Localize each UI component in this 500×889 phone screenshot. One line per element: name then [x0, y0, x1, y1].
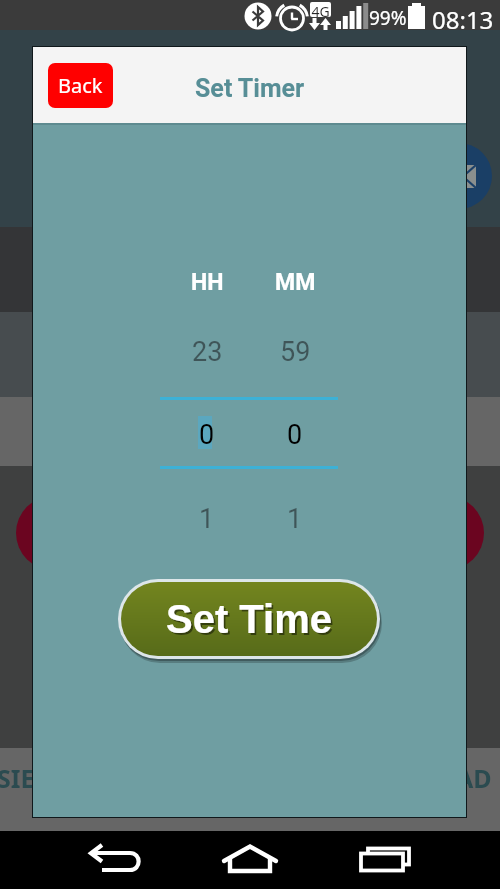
button[interactable]: Back: [48, 63, 113, 108]
button[interactable]: Recent apps: [350, 831, 430, 889]
staticText: 1: [287, 503, 303, 535]
staticText: 1: [199, 503, 215, 535]
staticText: Set Time: [168, 599, 334, 644]
staticText: 23: [192, 336, 223, 368]
button[interactable]: Back: [68, 831, 162, 889]
staticText: Set Time: [166, 597, 332, 642]
staticText: Back: [58, 72, 103, 99]
staticText: HH: [191, 269, 224, 296]
button[interactable]: Home: [210, 831, 290, 889]
staticText: SIE: [0, 761, 35, 795]
button[interactable]: Set Time: [121, 582, 377, 656]
staticText: 0: [199, 419, 215, 451]
staticText: 99%: [369, 5, 407, 31]
staticText: AD: [456, 761, 492, 795]
staticText: Set Timer: [195, 74, 305, 103]
staticText: 08:13: [432, 3, 494, 33]
staticText: 0: [287, 419, 303, 451]
staticText: 4G: [310, 2, 331, 17]
staticText: 59: [280, 336, 311, 368]
staticText: MM: [275, 269, 316, 296]
